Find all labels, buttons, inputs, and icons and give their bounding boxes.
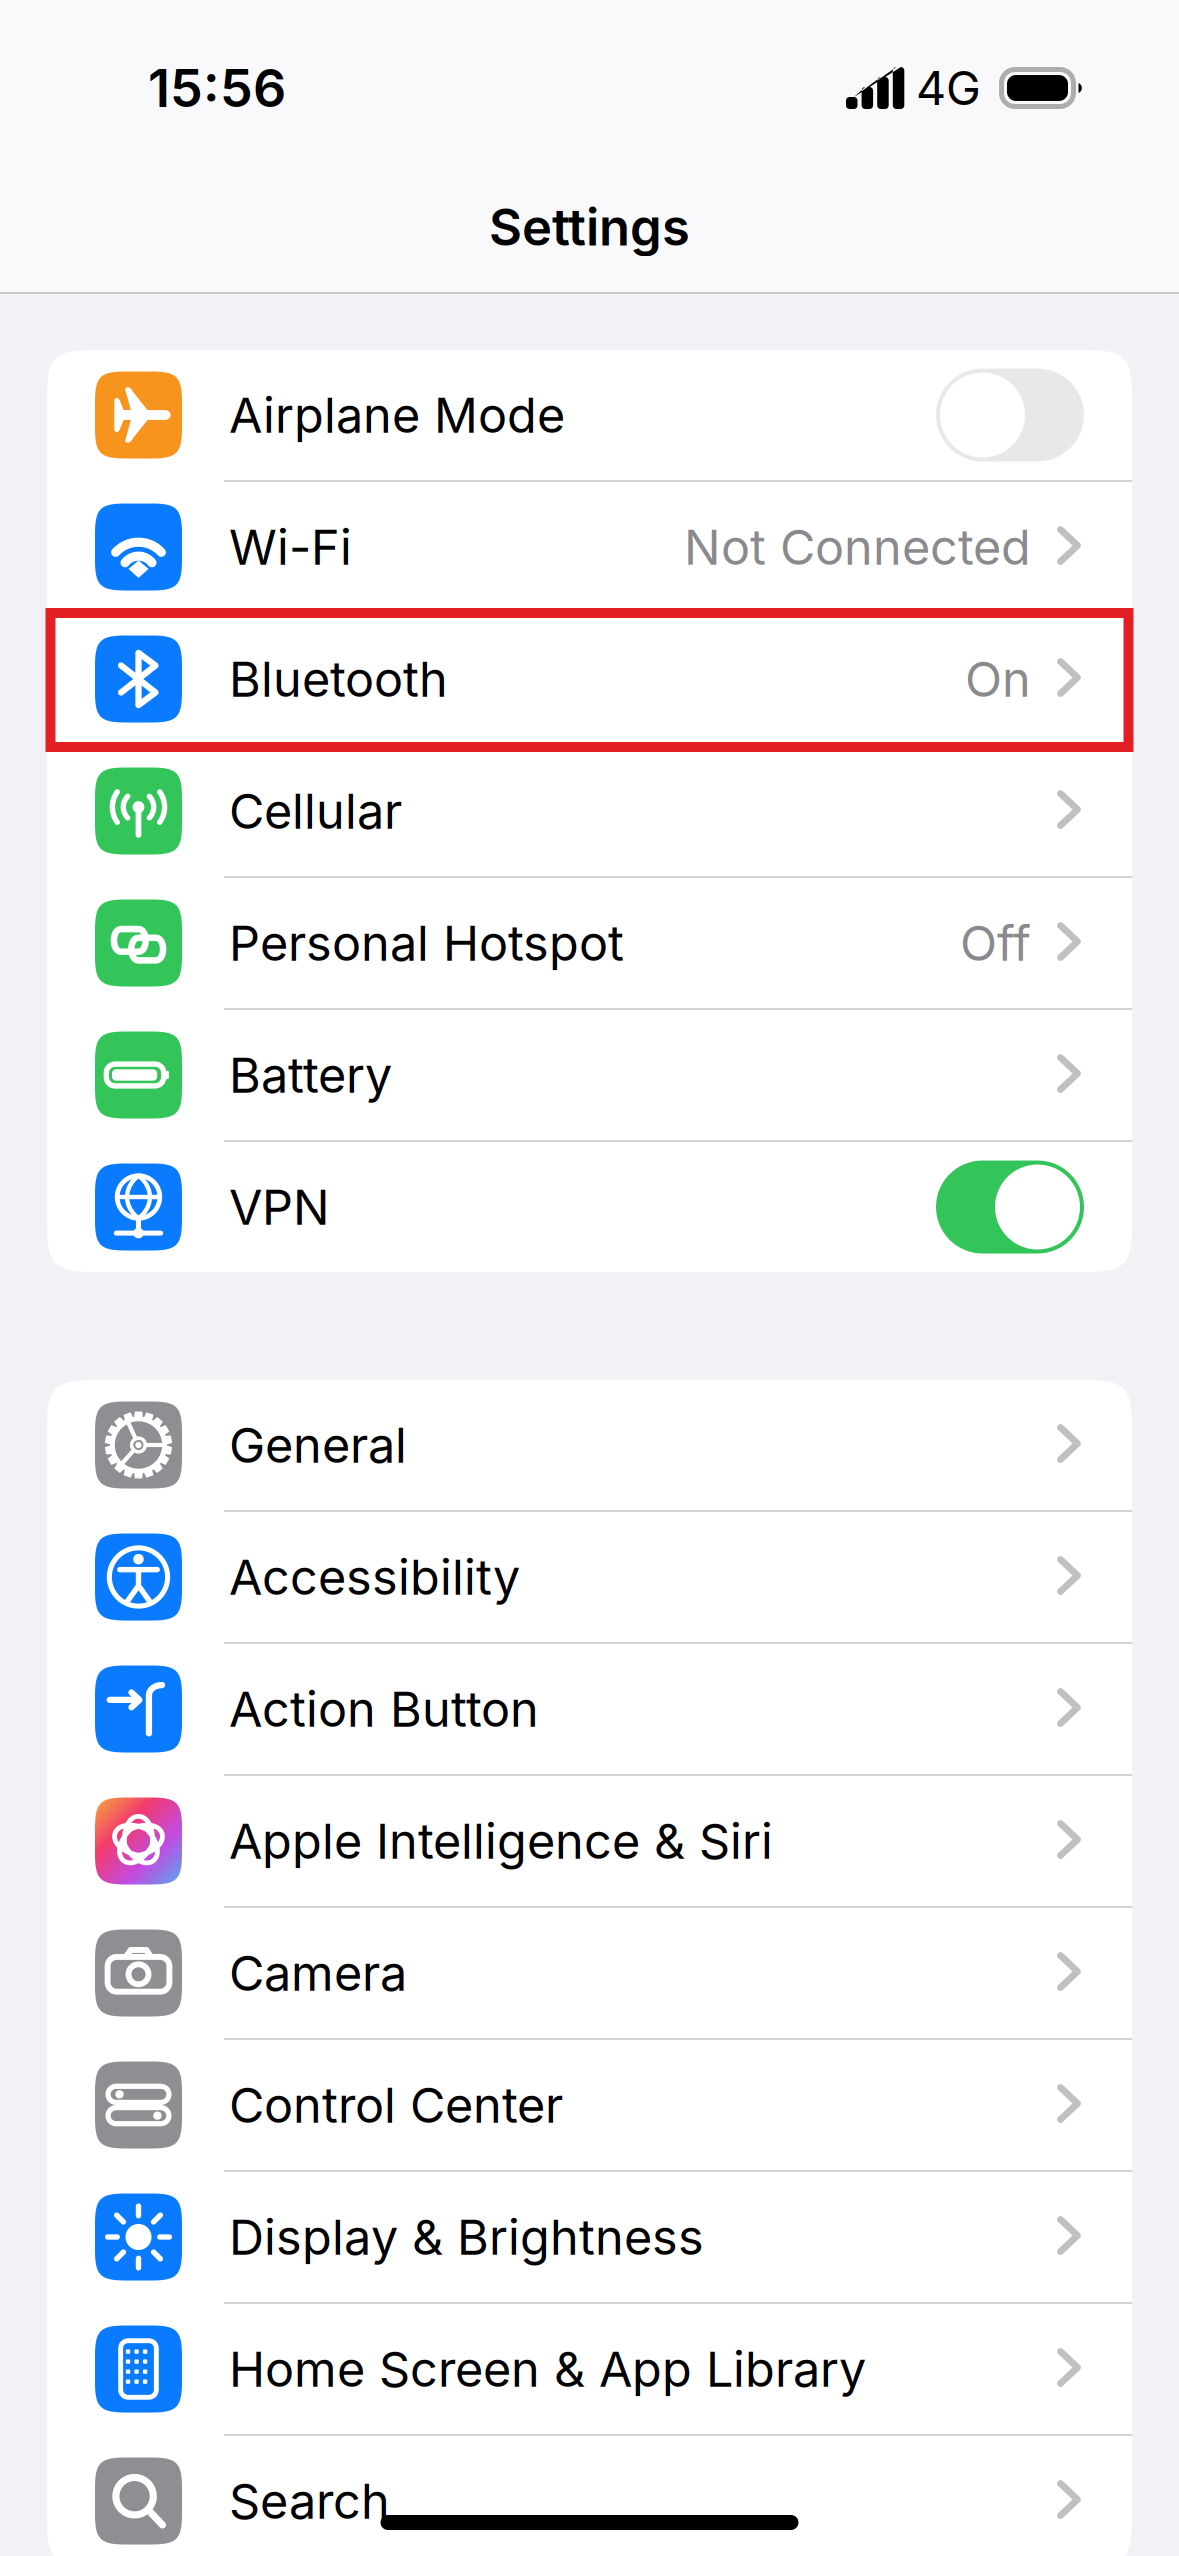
- staticText: Wi-Fi: [229, 518, 352, 576]
- button[interactable]: Wi-Fi: [47, 482, 1132, 612]
- staticText: Search: [229, 2472, 390, 2530]
- staticText: Control Center: [229, 2076, 563, 2134]
- button[interactable]: Camera: [47, 1908, 1132, 2038]
- staticText: Action Button: [229, 1680, 539, 1738]
- button[interactable]: Bluetooth: [47, 614, 1132, 744]
- staticText: Battery: [229, 1046, 392, 1104]
- staticText: Not Connected: [684, 518, 1031, 576]
- button[interactable]: Cellular: [47, 746, 1132, 876]
- button[interactable]: Battery: [47, 1010, 1132, 1140]
- staticText: Airplane Mode: [229, 386, 565, 444]
- button[interactable]: Apple Intelligence & Siri: [47, 1776, 1132, 1906]
- button[interactable]: Personal Hotspot: [47, 878, 1132, 1008]
- staticText: Off: [960, 914, 1031, 972]
- staticText: Settings: [489, 196, 690, 258]
- staticText: Camera: [229, 1944, 407, 2002]
- staticText: Cellular: [229, 782, 402, 840]
- staticText: VPN: [229, 1178, 330, 1236]
- staticText: 4G: [916, 60, 981, 116]
- button[interactable]: VPN: [47, 1142, 1132, 1272]
- staticText: Personal Hotspot: [229, 914, 624, 972]
- staticText: Bluetooth: [229, 650, 448, 708]
- button[interactable]: Search: [47, 2436, 1132, 2556]
- staticText: Home Screen & App Library: [229, 2340, 866, 2398]
- button[interactable]: Action Button: [47, 1644, 1132, 1774]
- button[interactable]: Display & Brightness: [47, 2172, 1132, 2302]
- staticText: Accessibility: [229, 1548, 520, 1606]
- button[interactable]: Airplane Mode: [47, 350, 1132, 480]
- staticText: General: [229, 1416, 407, 1474]
- staticText: Display & Brightness: [229, 2208, 704, 2266]
- button[interactable]: General: [47, 1380, 1132, 1510]
- button[interactable]: Control Center: [47, 2040, 1132, 2170]
- staticText: 15:56: [148, 56, 286, 119]
- button[interactable]: Accessibility: [47, 1512, 1132, 1642]
- staticText: On: [965, 650, 1031, 708]
- button[interactable]: Home Screen & App Library: [47, 2304, 1132, 2434]
- staticText: Apple Intelligence & Siri: [229, 1812, 773, 1870]
